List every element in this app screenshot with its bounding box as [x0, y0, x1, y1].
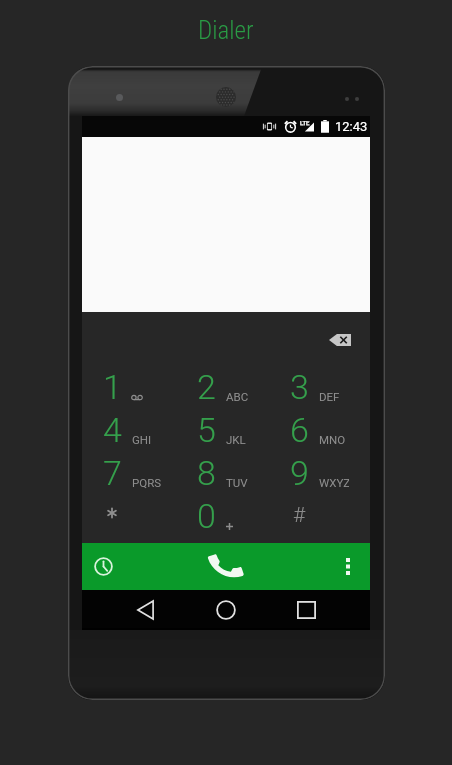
staticText: ABC	[226, 390, 249, 403]
staticText: 6	[290, 410, 309, 450]
staticText: 5	[197, 410, 216, 450]
button[interactable]: 4	[83, 408, 177, 451]
staticText: PQRS	[132, 476, 162, 489]
staticText: Dialer	[198, 16, 254, 45]
button[interactable]: More options	[326, 543, 370, 590]
staticText: LTE	[300, 119, 310, 126]
button[interactable]	[83, 494, 177, 537]
staticText: 7	[103, 453, 122, 493]
staticText: 1	[103, 367, 122, 407]
button[interactable]: 1	[83, 365, 177, 408]
staticText: 9	[290, 453, 309, 493]
staticText: 0	[197, 496, 216, 536]
button[interactable]: 6	[270, 408, 363, 451]
button[interactable]: 8	[177, 451, 270, 494]
button[interactable]: Call history	[82, 543, 124, 590]
staticText: #	[293, 503, 306, 528]
button[interactable]: Backspace	[318, 324, 362, 356]
button[interactable]: Home	[205, 591, 247, 629]
staticText: 2	[197, 367, 216, 407]
staticText: MNO	[319, 433, 346, 446]
staticText: 12:43	[335, 119, 368, 134]
button[interactable]: 7	[83, 451, 177, 494]
staticText: TUV	[226, 476, 248, 489]
staticText: 8	[197, 453, 216, 493]
button[interactable]: 5	[177, 408, 270, 451]
staticText: 4	[103, 410, 122, 450]
button[interactable]: 9	[270, 451, 363, 494]
button[interactable]: 0	[177, 494, 270, 537]
staticText: WXYZ	[319, 476, 349, 489]
button[interactable]: 3	[270, 365, 363, 408]
button[interactable]: Recents	[285, 591, 327, 629]
button[interactable]: #	[270, 494, 363, 537]
staticText: 3	[290, 367, 309, 407]
staticText: DEF	[319, 390, 340, 403]
button[interactable]: Back	[124, 591, 166, 629]
staticText: GHI	[132, 433, 152, 446]
button[interactable]: Call	[124, 543, 326, 590]
staticText: JKL	[226, 433, 246, 446]
button[interactable]: 2	[177, 365, 270, 408]
